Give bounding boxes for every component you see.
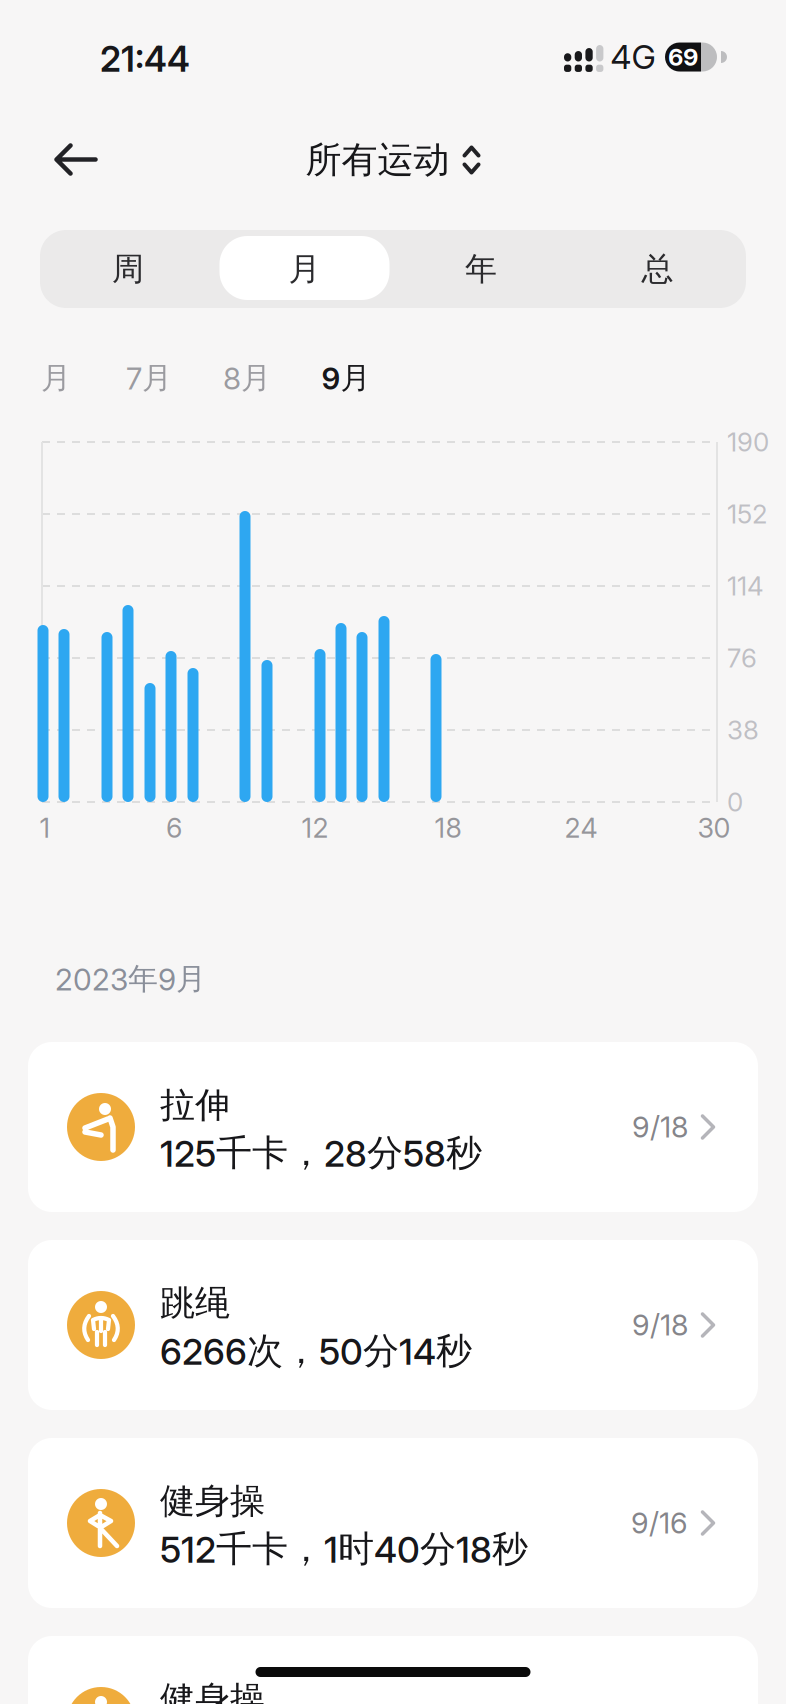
staticText: 0: [727, 786, 743, 818]
button[interactable]: 7月: [104, 350, 194, 406]
staticText: 月: [41, 359, 71, 397]
staticText: 125千卡，28分58秒: [160, 1130, 482, 1176]
staticText: 月: [288, 249, 320, 289]
button[interactable]: 月: [216, 230, 392, 308]
staticText: 6266次，50分14秒: [160, 1328, 472, 1374]
staticText: 8月: [223, 359, 271, 397]
staticText: 30: [697, 812, 730, 844]
staticText: 总: [641, 249, 673, 289]
staticText: 114: [727, 570, 764, 602]
staticText: 6: [166, 812, 182, 844]
staticText: 健身操: [160, 1479, 265, 1523]
button[interactable]: 拉伸: [28, 1042, 758, 1212]
button[interactable]: 月: [11, 350, 101, 406]
staticText: 24: [564, 812, 597, 844]
staticText: 18: [434, 812, 461, 844]
staticText: 152: [727, 498, 767, 530]
button[interactable]: 周: [40, 230, 216, 308]
staticText: 76: [727, 642, 757, 674]
staticText: 拉伸: [160, 1083, 230, 1127]
staticText: 1: [39, 812, 50, 844]
staticText: 69: [668, 42, 698, 71]
staticText: 9/16: [631, 1505, 688, 1541]
staticText: 12: [301, 812, 328, 844]
staticText: 4G: [610, 37, 655, 77]
button[interactable]: 9月: [301, 350, 391, 406]
button[interactable]: 8月: [202, 350, 292, 406]
button[interactable]: 总: [569, 230, 745, 308]
staticText: 21:44: [100, 38, 190, 80]
staticText: 512千卡，1时40分18秒: [160, 1526, 528, 1572]
staticText: 7月: [126, 359, 172, 397]
staticText: 周: [112, 249, 144, 289]
button[interactable]: 年: [393, 230, 569, 308]
staticText: 38: [727, 714, 759, 746]
staticText: 190: [727, 426, 769, 458]
staticText: 9月: [321, 359, 370, 397]
staticText: 所有运动: [305, 137, 449, 183]
button[interactable]: 健身操: [28, 1438, 758, 1608]
button[interactable]: 跳绳: [28, 1240, 758, 1410]
staticText: 2023年9月: [55, 960, 206, 998]
staticText: 年: [465, 249, 497, 289]
staticText: 9/18: [632, 1307, 688, 1343]
button[interactable]: 所有运动: [305, 137, 480, 183]
button[interactable]: 健身操: [28, 1636, 758, 1704]
staticText: 9/18: [632, 1109, 688, 1145]
staticText: 跳绳: [160, 1281, 230, 1325]
staticText: 健身操: [160, 1677, 265, 1704]
button[interactable]: Back: [39, 128, 112, 190]
